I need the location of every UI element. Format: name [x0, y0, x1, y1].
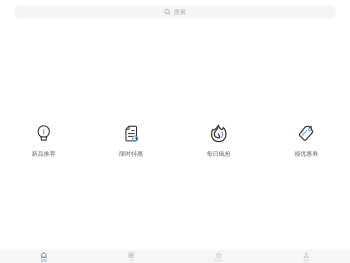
staticText: 每日疯抢 [207, 150, 231, 157]
staticText: 购物车 [214, 259, 223, 263]
button[interactable]: 搜索 [14, 5, 336, 19]
button[interactable]: 领优惠券 [262, 125, 350, 157]
staticText: 限时特惠 [119, 150, 143, 157]
button[interactable]: 新品推荐 [0, 125, 87, 157]
button[interactable]: 购物车 [175, 252, 262, 262]
staticText: 首页 [41, 259, 47, 263]
staticText: 分类 [128, 259, 134, 263]
button[interactable]: 我的 [262, 252, 350, 262]
staticText: 我的 [303, 259, 309, 263]
staticText: 搜索 [174, 8, 186, 16]
button[interactable]: 限时特惠 [87, 125, 175, 157]
button[interactable]: 分类 [87, 252, 175, 262]
button[interactable]: 每日疯抢 [175, 125, 262, 157]
button[interactable]: 首页 [0, 252, 87, 262]
staticText: 新品推荐 [32, 150, 56, 157]
staticText: 领优惠券 [294, 150, 318, 157]
